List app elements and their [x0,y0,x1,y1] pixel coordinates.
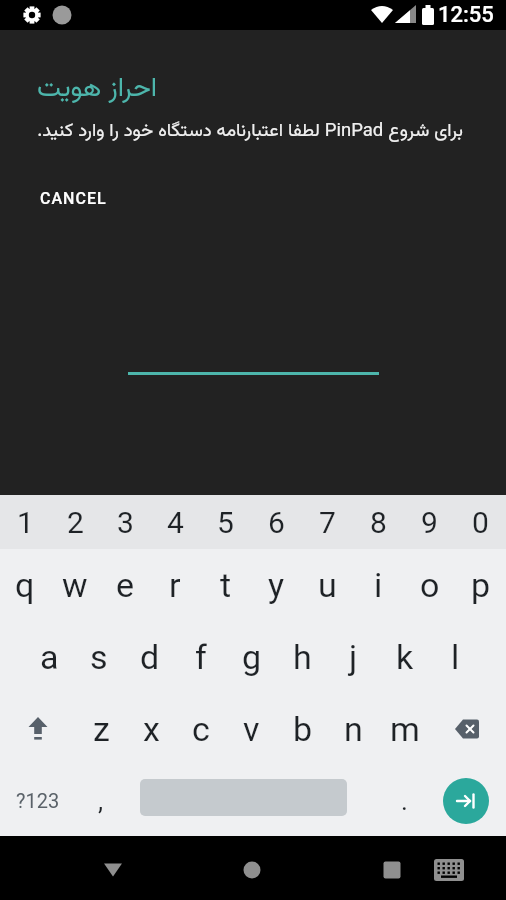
button[interactable] [374,852,410,888]
button[interactable]: 2 [50,495,100,549]
button[interactable]: l [430,621,481,693]
button[interactable]: z [76,693,126,765]
staticText: u [318,565,337,605]
staticText: z [93,709,110,749]
staticText: 4 [167,505,184,540]
button[interactable]: , [76,765,126,836]
staticText: a [40,637,59,677]
staticText: 9 [421,505,438,540]
button[interactable]: 9 [404,495,455,549]
button[interactable]: 7 [302,495,353,549]
button[interactable]: j [328,621,379,693]
staticText: x [143,709,160,749]
staticText: o [420,565,440,605]
button[interactable]: t [200,549,251,621]
staticText: s [90,637,108,677]
staticText: f [195,637,207,677]
staticText: . [401,786,408,816]
button[interactable] [0,693,76,765]
button[interactable] [431,852,467,888]
button[interactable]: r [150,549,200,621]
button[interactable]: y [251,549,302,621]
staticText: t [220,565,232,605]
button[interactable]: c [176,693,226,765]
button[interactable]: 3 [100,495,150,549]
button[interactable]: i [353,549,404,621]
button[interactable]: . [379,765,430,836]
staticText: q [15,565,35,605]
staticText: 12:55 [438,2,494,28]
staticText: y [268,565,285,605]
staticText: r [169,565,181,605]
button[interactable]: g [226,621,277,693]
button[interactable] [234,852,270,888]
staticText: 2 [67,505,84,540]
button[interactable]: o [404,549,455,621]
staticText: 6 [268,505,285,540]
button[interactable]: p [455,549,506,621]
staticText: d [140,637,160,677]
button[interactable]: 0 [455,495,506,549]
staticText: e [116,565,135,605]
staticText: 5 [217,505,234,540]
button[interactable]: q [0,549,50,621]
button[interactable]: 4 [150,495,200,549]
button[interactable]: 1 [0,495,50,549]
button[interactable]: d [124,621,175,693]
button[interactable]: n [328,693,379,765]
staticText: 3 [117,505,134,540]
button[interactable]: 6 [251,495,302,549]
staticText: i [374,565,383,605]
staticText: m [390,709,420,749]
button[interactable]: CANCEL [30,179,117,218]
staticText: ?123 [16,789,60,812]
staticText: w [62,565,88,605]
button[interactable] [430,693,506,765]
staticText: n [344,709,363,749]
staticText: 0 [472,505,489,540]
button[interactable]: w [50,549,100,621]
button[interactable]: ?123 [0,765,76,836]
staticText: j [349,637,358,677]
staticText: 8 [370,505,387,540]
staticText: برای شروع PinPad لطفا اعتبارنامه دستگاه … [37,117,463,146]
button[interactable]: a [24,621,74,693]
staticText: g [242,637,262,677]
button[interactable]: h [277,621,328,693]
button[interactable]: b [277,693,328,765]
button[interactable]: v [226,693,277,765]
staticText: 1 [17,505,34,540]
staticText: b [293,709,313,749]
staticText: l [451,637,460,677]
button[interactable]: x [126,693,176,765]
staticText: 7 [319,505,336,540]
staticText: p [471,565,491,605]
button[interactable]: e [100,549,150,621]
button[interactable]: 8 [353,495,404,549]
staticText: v [243,709,260,749]
button[interactable]: m [379,693,430,765]
button[interactable]: u [302,549,353,621]
button[interactable] [443,778,489,824]
staticText: , [98,786,104,816]
staticText: h [293,637,312,677]
staticText: CANCEL [40,189,107,208]
button[interactable]: s [74,621,124,693]
staticText: احراز هویت [37,68,157,110]
staticText: c [192,709,210,749]
staticText: k [396,637,414,677]
button[interactable] [95,852,131,888]
button[interactable]: f [175,621,226,693]
button[interactable]: 5 [200,495,251,549]
button[interactable]: k [379,621,430,693]
